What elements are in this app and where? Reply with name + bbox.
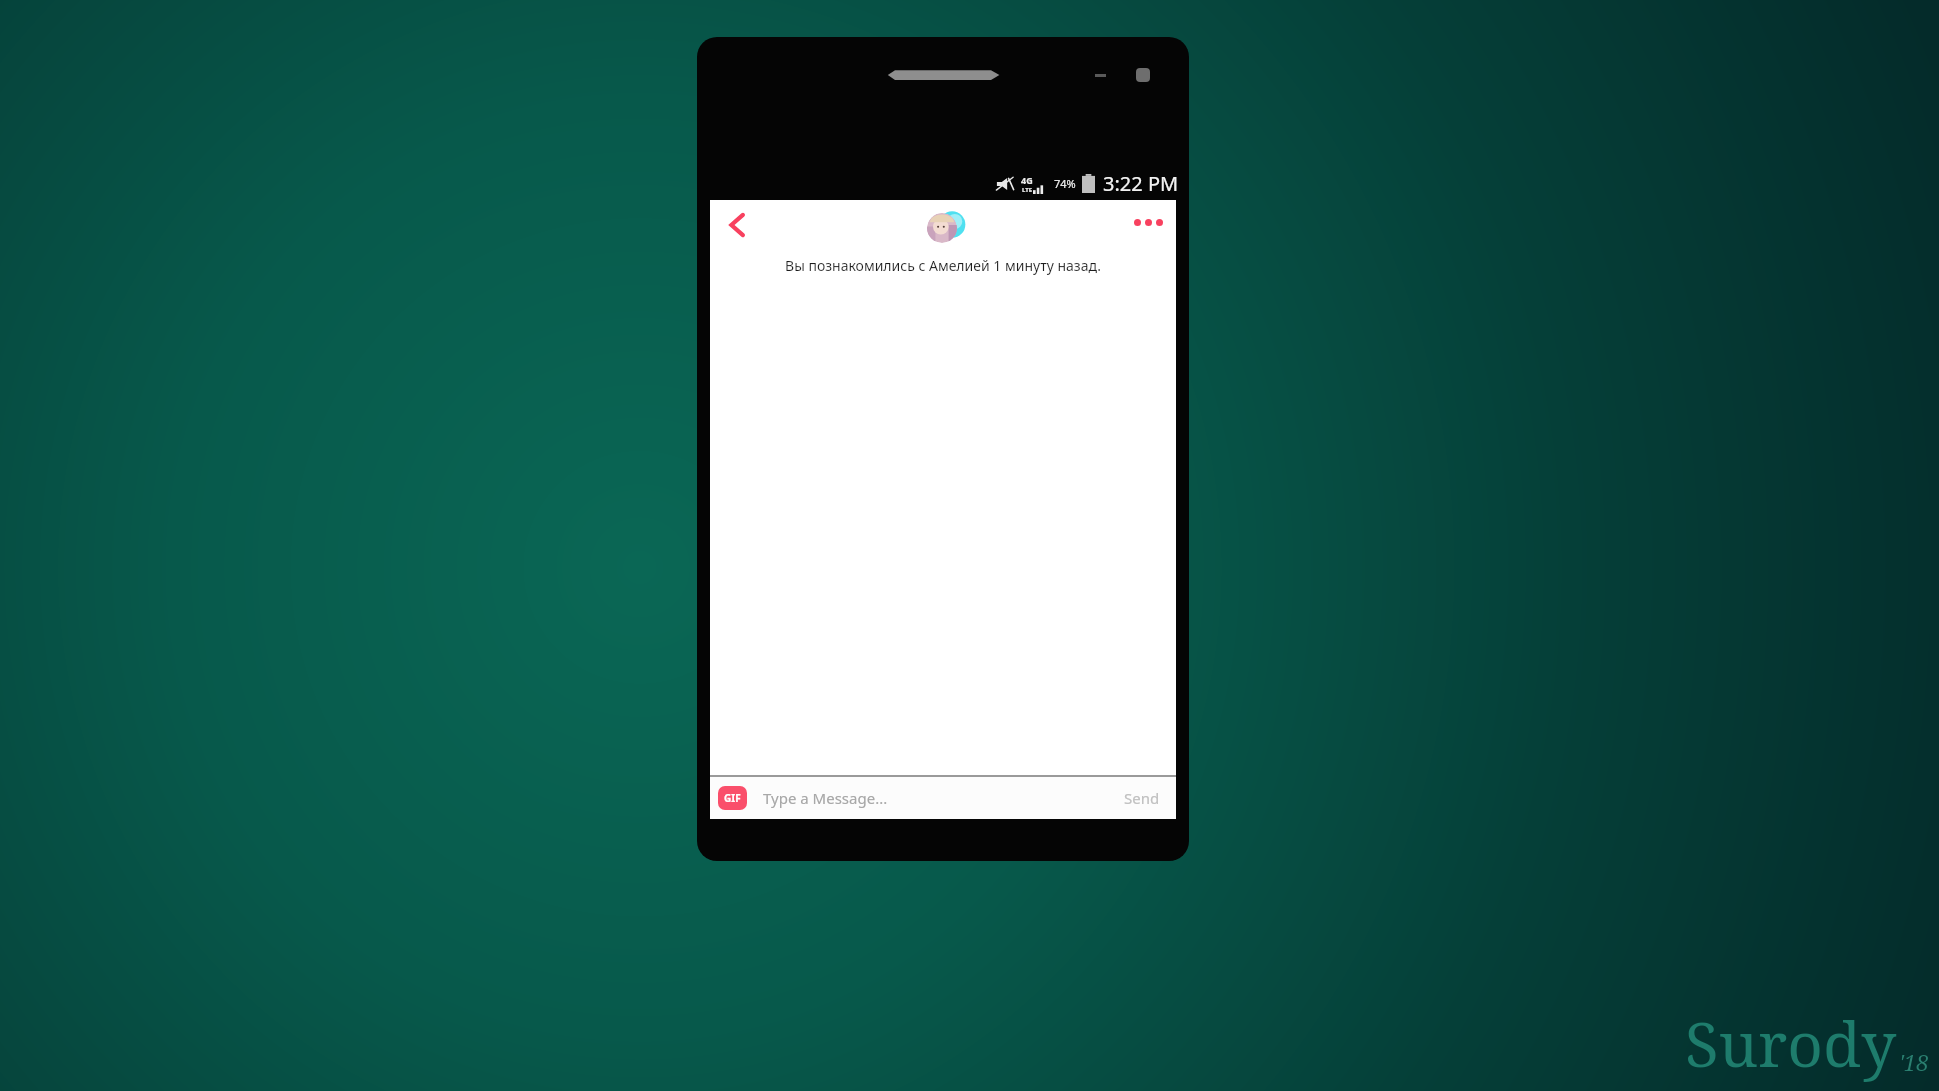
button[interactable]: More options <box>1128 205 1168 245</box>
button[interactable]: Send a GIF <box>718 786 747 810</box>
staticText: 74% <box>1054 176 1076 191</box>
button[interactable]: Type a Message... <box>763 777 1116 819</box>
staticText: Вы познакомились с Амелией 1 минуту наза… <box>785 256 1101 275</box>
staticText: 3:22 PM <box>1103 170 1179 197</box>
staticText: GIF <box>724 791 741 805</box>
staticText: 4G <box>1021 174 1033 186</box>
staticText: Surody <box>1685 1001 1897 1085</box>
button[interactable]: Back <box>719 207 755 243</box>
staticText: Send <box>1124 788 1160 808</box>
staticText: Type a Message... <box>763 788 888 808</box>
staticText: '18 <box>1899 1047 1929 1077</box>
staticText: LTE <box>1022 186 1033 194</box>
button[interactable]: Profile <box>924 206 968 250</box>
button[interactable]: Send <box>1116 777 1168 819</box>
